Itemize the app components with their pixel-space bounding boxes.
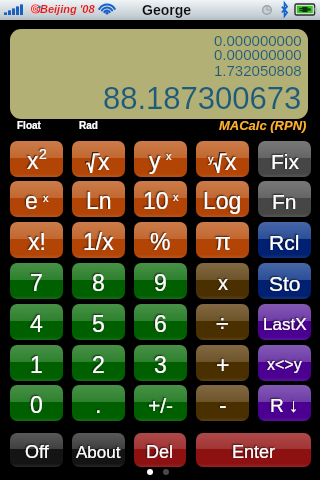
- staticText: Fn: [272, 190, 297, 213]
- staticText: x: [173, 191, 179, 203]
- staticText: 2: [92, 352, 105, 378]
- button[interactable]: reciprocal: [72, 222, 125, 258]
- button[interactable]: Store: [258, 263, 311, 299]
- button[interactable]: multiply: [196, 263, 249, 299]
- button[interactable]: Enter: [196, 433, 311, 467]
- staticText: 0.000000000: [214, 32, 302, 49]
- button[interactable]: divide: [196, 304, 249, 340]
- staticText: Enter: [232, 442, 276, 462]
- staticText: x: [98, 149, 110, 175]
- button[interactable]: 8: [72, 263, 125, 299]
- staticText: George: [142, 2, 192, 18]
- button[interactable]: 0: [10, 385, 63, 421]
- staticText: 3: [154, 352, 167, 378]
- button[interactable]: swap x and y: [258, 345, 311, 381]
- button[interactable]: 3: [134, 345, 187, 381]
- staticText: Del: [146, 442, 174, 462]
- button[interactable]: 1: [10, 345, 63, 381]
- button[interactable]: 7: [10, 263, 63, 299]
- button[interactable]: Fn: [258, 181, 311, 217]
- staticText: Sto: [269, 272, 301, 295]
- staticText: 0: [30, 392, 43, 418]
- button[interactable]: minus: [196, 385, 249, 421]
- staticText: R ↓: [270, 395, 299, 416]
- staticText: x<>y: [267, 356, 302, 374]
- button[interactable]: 5: [72, 304, 125, 340]
- staticText: .: [95, 392, 102, 418]
- button[interactable]: e to the x: [10, 181, 63, 217]
- button[interactable]: 6: [134, 304, 187, 340]
- button[interactable]: 10 to the x: [134, 181, 187, 217]
- staticText: x: [27, 148, 39, 174]
- staticText: Rad: [79, 120, 98, 131]
- staticText: Ln: [86, 188, 112, 214]
- staticText: Fix: [271, 150, 299, 173]
- button[interactable]: factorial: [10, 222, 63, 258]
- staticText: +: [216, 352, 230, 378]
- button[interactable]: Log: [196, 181, 249, 217]
- staticText: Rcl: [269, 231, 300, 254]
- button[interactable]: Fix: [258, 141, 311, 177]
- button[interactable]: decimal point: [72, 385, 125, 421]
- staticText: x: [225, 149, 237, 175]
- staticText: Beijing '08: [40, 3, 95, 15]
- staticText: Log: [203, 188, 242, 214]
- button[interactable]: About: [72, 433, 125, 467]
- staticText: 4: [30, 311, 43, 337]
- staticText: 1/x: [83, 229, 114, 255]
- staticText: 5: [92, 311, 105, 337]
- button[interactable]: Off: [10, 433, 63, 467]
- staticText: 6: [154, 311, 167, 337]
- button[interactable]: square root: [72, 141, 125, 177]
- button[interactable]: roll down: [258, 385, 311, 421]
- button[interactable]: Last X: [258, 304, 311, 340]
- staticText: 8: [92, 270, 105, 296]
- staticText: 9: [154, 270, 167, 296]
- button[interactable]: pi: [196, 222, 249, 258]
- staticText: %: [150, 229, 171, 255]
- staticText: 88.187300673: [103, 81, 302, 116]
- staticText: Float: [17, 120, 41, 131]
- button[interactable]: y to the x: [134, 141, 187, 177]
- staticText: 1.732050808: [214, 62, 302, 79]
- button[interactable]: Delete: [134, 433, 186, 467]
- staticText: About: [76, 443, 121, 462]
- staticText: Off: [25, 442, 49, 462]
- staticText: 1: [30, 352, 43, 378]
- staticText: x: [218, 272, 228, 294]
- staticText: π: [215, 229, 231, 255]
- staticText: x: [43, 192, 49, 204]
- staticText: 10: [143, 188, 169, 214]
- button[interactable]: x squared: [10, 141, 63, 177]
- staticText: MACalc (RPN): [219, 118, 307, 133]
- staticText: 🎯: [30, 4, 42, 15]
- button[interactable]: 9: [134, 263, 187, 299]
- staticText: 2: [39, 146, 47, 162]
- staticText: x: [166, 150, 172, 162]
- staticText: LastX: [263, 315, 307, 334]
- staticText: y: [208, 153, 214, 165]
- button[interactable]: 2: [72, 345, 125, 381]
- button[interactable]: Ln: [72, 181, 125, 217]
- staticText: +/-: [148, 394, 174, 417]
- button[interactable]: change sign: [134, 385, 187, 421]
- staticText: 0.000000000: [214, 46, 302, 63]
- button[interactable]: plus: [196, 345, 249, 381]
- button[interactable]: 4: [10, 304, 63, 340]
- staticText: ÷: [216, 311, 229, 337]
- button[interactable]: percent: [134, 222, 187, 258]
- button[interactable]: x-th root: [196, 141, 249, 177]
- staticText: e: [25, 188, 38, 214]
- staticText: y: [149, 148, 161, 174]
- staticText: 7: [30, 270, 43, 296]
- staticText: x!: [28, 229, 46, 255]
- button[interactable]: Recall: [258, 222, 311, 258]
- staticText: -: [219, 392, 227, 418]
